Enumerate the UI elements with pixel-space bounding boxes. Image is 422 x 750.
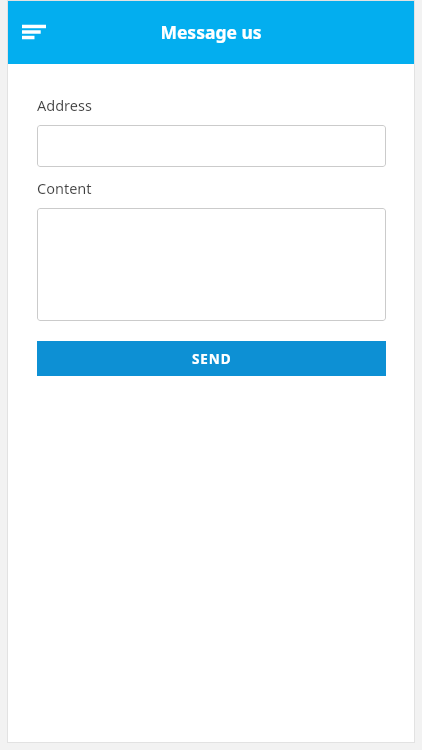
button[interactable]: Address input field <box>37 125 386 167</box>
staticText: Message us <box>7 20 415 44</box>
staticText: Content <box>37 178 92 198</box>
staticText: SEND <box>192 350 232 368</box>
staticText: Address <box>37 95 92 115</box>
button[interactable]: SEND <box>37 341 386 376</box>
button[interactable]: Content input field <box>37 208 386 321</box>
button[interactable]: Open navigation menu <box>13 11 55 53</box>
